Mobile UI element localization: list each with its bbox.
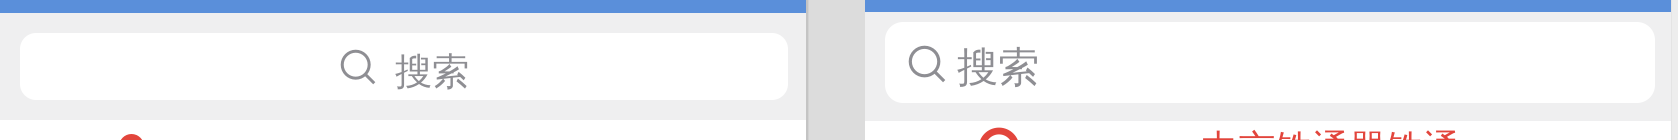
button[interactable]: 中京铁通器铁通 — [865, 121, 1672, 140]
staticText: 中京铁通器铁通 — [1201, 126, 1460, 140]
button[interactable]: 搜索 — [885, 22, 1655, 103]
button[interactable]: 搜索结果 — [0, 120, 806, 140]
staticText: 搜索 — [957, 42, 1039, 93]
staticText: 搜索 — [395, 49, 469, 95]
button[interactable]: 搜索 — [20, 33, 788, 100]
